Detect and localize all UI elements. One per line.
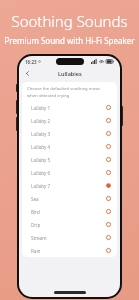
staticText: Lullaby 3	[31, 131, 51, 137]
staticText: Lullaby 5	[31, 157, 51, 163]
button[interactable]: Sea	[22, 192, 117, 205]
staticText: Lullaby 4	[31, 144, 51, 150]
staticText: Choose the defaulted soothing music when…	[27, 86, 109, 98]
button[interactable]: Rain	[22, 244, 117, 257]
staticText: Lullaby 1	[31, 105, 51, 111]
button[interactable]: Bird	[22, 205, 117, 218]
button[interactable]: Lullaby 7	[22, 179, 117, 192]
staticText: Lullabies	[58, 70, 82, 77]
staticText: Sea	[31, 196, 39, 202]
staticText: Rain	[31, 248, 41, 254]
staticText: 16:23	[25, 59, 37, 65]
staticText: Soothing Sounds	[11, 11, 128, 31]
button[interactable]: Lullaby 5	[22, 153, 117, 166]
button[interactable]: Stream	[22, 231, 117, 244]
staticText: Bird	[31, 209, 40, 215]
button[interactable]: Lullaby 4	[22, 140, 117, 153]
button[interactable]: Drip	[22, 218, 117, 231]
button[interactable]: Back	[22, 68, 33, 79]
staticText: Drip	[31, 222, 41, 228]
staticText: Lullaby 2	[31, 118, 51, 124]
button[interactable]: Lullaby 2	[22, 114, 117, 127]
staticText: Lullaby 6	[31, 170, 51, 176]
button[interactable]: Lullaby 1	[22, 101, 117, 114]
staticText: Premium Sound with Hi-Fi Speaker	[4, 35, 135, 46]
button[interactable]: Lullaby 3	[22, 127, 117, 140]
staticText: Lullaby 7	[31, 183, 51, 189]
button[interactable]: Lullaby 6	[22, 166, 117, 179]
staticText: Stream	[31, 235, 47, 241]
